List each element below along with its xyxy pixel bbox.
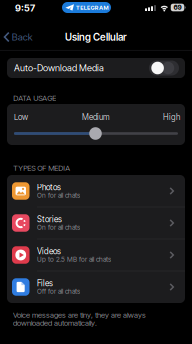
staticText: downloaded automatically.	[13, 318, 97, 328]
staticText: Off for all chats	[37, 287, 80, 295]
staticText: Medium	[82, 112, 110, 122]
staticText: Low	[14, 112, 28, 122]
staticText: On for all chats	[37, 191, 80, 199]
staticText: TELEGRAM	[76, 4, 108, 11]
staticText: Up to 2.5 MB for all chats	[37, 255, 111, 263]
staticText: Stories	[37, 214, 62, 224]
staticText: Photos	[37, 182, 61, 192]
staticText: 69	[173, 3, 181, 11]
button[interactable]: Photos	[7, 175, 185, 207]
staticText: Auto-Download Media	[14, 62, 104, 73]
staticText: Videos	[37, 246, 61, 256]
button[interactable]: Back	[2, 30, 35, 44]
staticText: High	[163, 112, 180, 122]
staticText: Back	[12, 31, 33, 43]
staticText: Using Cellular	[65, 31, 127, 43]
staticText: DATA USAGE	[13, 93, 56, 103]
button[interactable]: Auto-Download Media	[7, 58, 185, 78]
staticText: Voice messages are tiny, they are always	[13, 310, 146, 320]
button[interactable]: Stories	[7, 207, 185, 239]
button[interactable]: Return to Telegram	[62, 2, 111, 13]
staticText: On for all chats	[37, 223, 80, 231]
staticText: 9:57	[15, 2, 35, 14]
staticText: TYPES OF MEDIA	[13, 163, 70, 173]
button[interactable]: Videos	[7, 239, 185, 271]
button[interactable]: Files	[7, 271, 185, 303]
staticText: Files	[37, 278, 53, 288]
